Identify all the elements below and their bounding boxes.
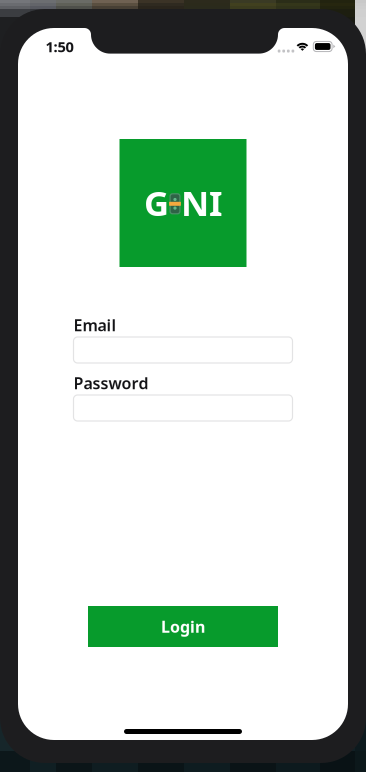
button[interactable]: Password — [73, 395, 292, 421]
staticText: Login — [161, 616, 205, 637]
staticText: NI — [181, 179, 222, 225]
staticText: Email — [73, 314, 116, 336]
staticText: G — [144, 179, 169, 225]
staticText: 1:50 — [45, 37, 73, 56]
button[interactable]: Email — [73, 337, 292, 363]
button[interactable]: Login — [88, 606, 278, 647]
staticText: Password — [73, 372, 148, 394]
